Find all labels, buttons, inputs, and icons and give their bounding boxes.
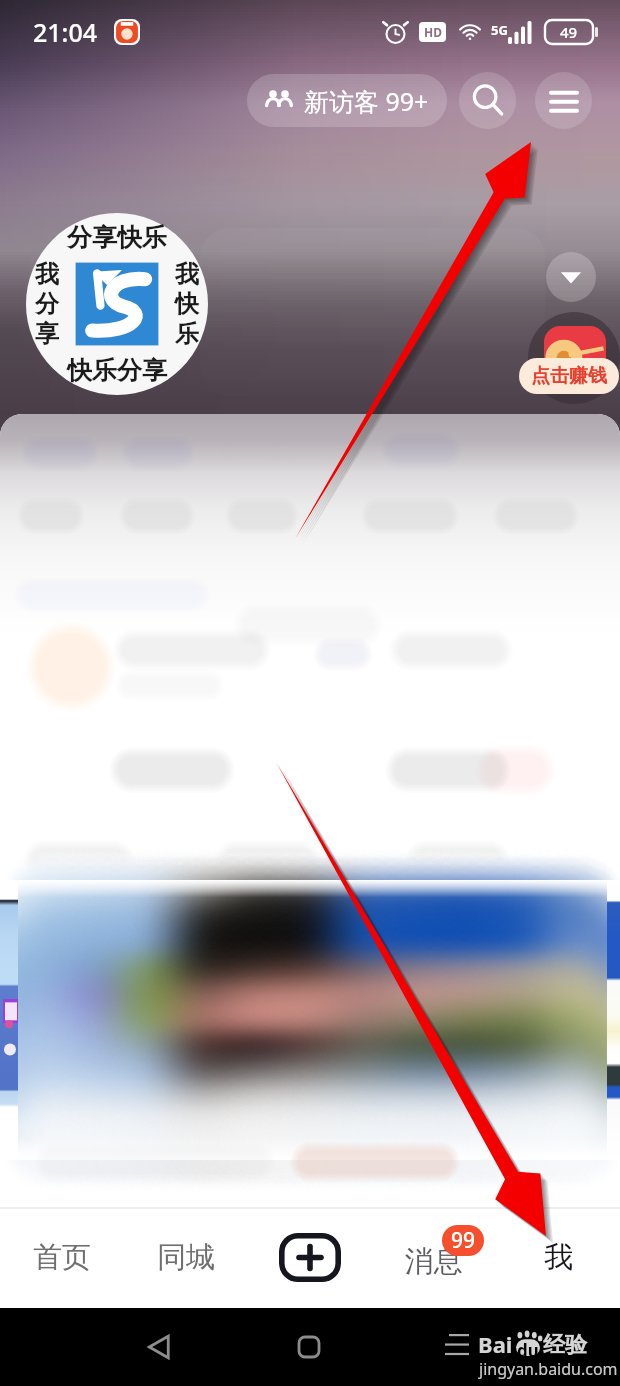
staticText: 我 bbox=[544, 1239, 573, 1276]
button[interactable]: Search bbox=[459, 72, 516, 129]
staticText: 消息 bbox=[405, 1243, 463, 1280]
staticText: jingyan.baidu.com bbox=[479, 1358, 618, 1380]
staticText: 49 bbox=[560, 22, 578, 42]
staticText: 经验 bbox=[543, 1331, 587, 1359]
staticText: 我 bbox=[35, 259, 59, 289]
button[interactable]: Back bbox=[139, 1327, 179, 1367]
button[interactable]: 点击赚钱 bbox=[519, 358, 619, 394]
button[interactable]: 首页 bbox=[0, 1207, 124, 1308]
staticText: Bai bbox=[478, 1329, 513, 1359]
button[interactable]: 我 bbox=[496, 1207, 620, 1308]
staticText: du bbox=[517, 1339, 539, 1362]
button[interactable]: 新访客 99+ bbox=[247, 74, 447, 127]
staticText: 新访客 99+ bbox=[304, 84, 429, 118]
staticText: 同城 bbox=[157, 1239, 215, 1276]
staticText: 21:04 bbox=[33, 15, 98, 49]
staticText: 快 bbox=[175, 289, 199, 319]
staticText: 99 bbox=[451, 1226, 476, 1255]
staticText: 我 bbox=[175, 259, 199, 289]
button[interactable]: Menu bbox=[535, 72, 592, 129]
button[interactable]: Collapse bbox=[546, 252, 596, 302]
staticText: 乐 bbox=[175, 319, 199, 349]
button[interactable]: Post bbox=[279, 1233, 341, 1282]
staticText: 点击赚钱 bbox=[531, 364, 607, 388]
staticText: 分 bbox=[35, 289, 59, 319]
button[interactable]: 消息 bbox=[397, 1227, 471, 1288]
button[interactable]: Home bbox=[289, 1327, 329, 1367]
staticText: 首页 bbox=[33, 1239, 91, 1276]
button[interactable]: 同城 bbox=[124, 1207, 248, 1308]
staticText: 享 bbox=[35, 319, 59, 349]
staticText: 5G bbox=[491, 21, 508, 39]
staticText: 分享快乐 bbox=[67, 222, 167, 253]
staticText: 快乐分享 bbox=[67, 355, 167, 386]
staticText: HD bbox=[424, 24, 442, 40]
